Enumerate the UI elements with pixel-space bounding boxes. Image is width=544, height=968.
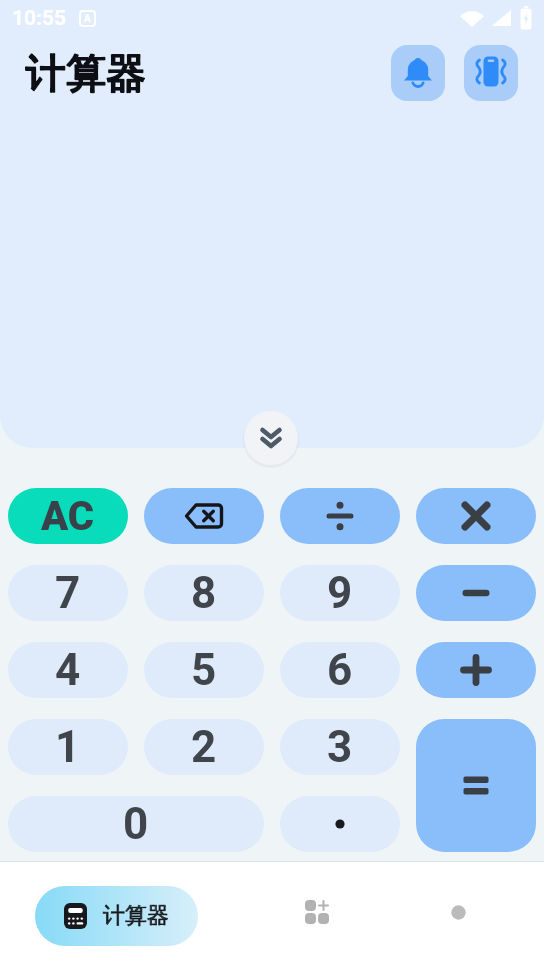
button[interactable]: 7 bbox=[8, 565, 128, 621]
button[interactable] bbox=[416, 488, 536, 544]
button[interactable]: 8 bbox=[144, 565, 264, 621]
button[interactable] bbox=[441, 895, 475, 929]
button[interactable]: 2 bbox=[144, 719, 264, 775]
button[interactable] bbox=[144, 488, 264, 544]
button[interactable]: 4 bbox=[8, 642, 128, 698]
button[interactable] bbox=[416, 565, 536, 621]
button[interactable] bbox=[416, 719, 536, 852]
button[interactable]: 5 bbox=[144, 642, 264, 698]
button[interactable] bbox=[464, 45, 518, 101]
button[interactable] bbox=[280, 796, 400, 852]
button[interactable]: AC bbox=[8, 488, 128, 544]
staticText: 8 bbox=[191, 567, 217, 619]
button[interactable]: 计算器 bbox=[35, 886, 198, 946]
staticText: 计算器 bbox=[103, 902, 169, 930]
button[interactable]: 3 bbox=[280, 719, 400, 775]
button[interactable] bbox=[391, 45, 445, 101]
staticText: 9 bbox=[327, 567, 353, 619]
staticText: 5 bbox=[191, 644, 217, 696]
staticText: 2 bbox=[191, 721, 217, 773]
staticText: 6 bbox=[327, 644, 353, 696]
button[interactable] bbox=[280, 488, 400, 544]
staticText: A bbox=[84, 13, 91, 25]
staticText: 1 bbox=[55, 721, 81, 773]
button[interactable]: 1 bbox=[8, 719, 128, 775]
staticText: 3 bbox=[327, 721, 353, 773]
button[interactable] bbox=[296, 891, 338, 933]
staticText: 10:55 bbox=[12, 6, 67, 31]
staticText: 计算器 bbox=[103, 902, 169, 930]
staticText: 计算器 bbox=[26, 48, 146, 98]
staticText: AC bbox=[41, 493, 95, 540]
button[interactable]: 0 bbox=[8, 796, 264, 852]
button[interactable]: 6 bbox=[280, 642, 400, 698]
button[interactable]: 9 bbox=[280, 565, 400, 621]
button[interactable] bbox=[244, 411, 298, 465]
staticText: 0 bbox=[123, 798, 149, 850]
staticText: 4 bbox=[55, 644, 81, 696]
staticText: 7 bbox=[55, 567, 81, 619]
staticText: 计算器 bbox=[26, 48, 146, 98]
button[interactable] bbox=[416, 642, 536, 698]
